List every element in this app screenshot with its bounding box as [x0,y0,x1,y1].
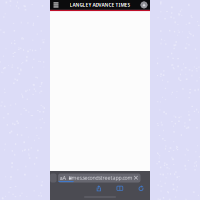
button[interactable]: Reload [139,185,143,191]
button[interactable]: Address [58,173,140,182]
button[interactable]: Share [96,185,101,191]
staticText: LANGLEY ADVANCE TIMES [69,2,130,8]
staticText: times.secondstreetapp.com [69,174,133,181]
button[interactable]: Bookmarks [117,185,123,191]
button[interactable]: Account [138,0,149,10]
staticText: ✕ [133,174,139,182]
button[interactable]: Menu [50,0,61,10]
staticText: aA [60,174,67,182]
